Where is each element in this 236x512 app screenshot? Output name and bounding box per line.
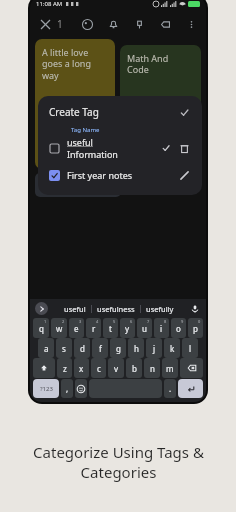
staticText: u [142, 323, 147, 334]
button[interactable]: Select tag [49, 143, 60, 154]
button[interactable]: n [144, 358, 160, 378]
button[interactable]: z [57, 358, 72, 378]
staticText: r [92, 323, 96, 334]
button[interactable]: , [61, 379, 73, 398]
staticText: ?123 [40, 385, 53, 393]
staticText: , [66, 383, 69, 394]
button[interactable]: v [108, 358, 124, 378]
button[interactable]: r [86, 318, 101, 338]
button[interactable]: c [91, 358, 106, 378]
staticText: useful [67, 136, 93, 148]
button[interactable]: Label [157, 16, 173, 32]
staticText: i [160, 323, 163, 334]
button[interactable]: Close [37, 16, 53, 32]
staticText: p [193, 323, 198, 334]
staticText: m [166, 363, 174, 374]
staticText: o [176, 323, 181, 334]
staticText: v [114, 363, 119, 374]
staticText: 9 [181, 319, 184, 324]
staticText: Categorize Using Tags & Categories [33, 442, 204, 482]
staticText: x [79, 363, 84, 374]
button[interactable]: o [171, 318, 186, 338]
staticText: l [189, 343, 192, 354]
staticText: First year notes [67, 169, 133, 181]
button[interactable]: usefully [141, 302, 179, 316]
staticText: s [62, 343, 66, 354]
staticText: A little love goes a long way [42, 46, 91, 82]
staticText: a [44, 343, 49, 354]
staticText: n [150, 363, 155, 374]
staticText: usefully [146, 304, 174, 314]
button[interactable]: Symbols [33, 379, 59, 398]
staticText: useful [64, 304, 86, 314]
button[interactable]: i [154, 318, 169, 338]
staticText: Math And Code [127, 52, 169, 76]
staticText: c [97, 363, 101, 374]
button[interactable]: Enter [178, 379, 203, 398]
button[interactable]: More options [183, 16, 199, 32]
button[interactable]: . [164, 379, 176, 398]
button[interactable]: A little love goes a long way [35, 39, 115, 169]
button[interactable]: Confirm [177, 105, 191, 119]
staticText: Information [67, 148, 118, 160]
button[interactable]: x [74, 358, 89, 378]
button[interactable]: f [92, 338, 108, 358]
button[interactable]: w [51, 318, 67, 338]
staticText: usefulness [97, 304, 135, 314]
button[interactable]: k [164, 338, 180, 358]
staticText: h [134, 343, 139, 354]
button[interactable]: j [146, 338, 162, 358]
button[interactable]: b [126, 358, 142, 378]
staticText: t [109, 323, 112, 334]
button[interactable]: Voice input [188, 302, 201, 315]
button[interactable]: q [33, 318, 49, 338]
button[interactable]: Apply [159, 141, 173, 155]
staticText: 11:08 AM [36, 0, 63, 8]
button[interactable]: t [103, 318, 118, 338]
button[interactable]: u [137, 318, 152, 338]
staticText: f [99, 343, 102, 354]
staticText: Create Tag [49, 105, 99, 119]
button[interactable]: d [74, 338, 90, 358]
staticText: 7 [147, 319, 150, 324]
button[interactable]: Reminder [105, 16, 121, 32]
button[interactable]: Delete [177, 141, 191, 155]
button[interactable]: s [56, 338, 72, 358]
button[interactable] [35, 173, 121, 197]
staticText: 6 [130, 319, 133, 324]
staticText: 1 [57, 17, 63, 31]
button[interactable]: p [188, 318, 203, 338]
staticText: 8 [164, 319, 167, 324]
button[interactable]: y [120, 318, 135, 338]
button[interactable]: m [162, 358, 178, 378]
button[interactable]: g [110, 338, 126, 358]
button[interactable]: a [38, 338, 54, 358]
staticText: e [74, 323, 79, 334]
staticText: z [63, 363, 67, 374]
button[interactable]: l [182, 338, 198, 358]
staticText: d [80, 343, 85, 354]
staticText: 5 [113, 319, 116, 324]
button[interactable]: Math And Code [120, 45, 201, 167]
button[interactable]: Pin [131, 16, 147, 32]
button[interactable]: Emoji [75, 379, 87, 398]
button[interactable]: First year notes [49, 168, 191, 182]
staticText: b [132, 363, 137, 374]
other: Edit [177, 168, 191, 182]
button[interactable]: useful [59, 302, 91, 316]
staticText: q [39, 323, 44, 334]
staticText: k [170, 343, 175, 354]
staticText: My Math Notes [42, 152, 93, 162]
button[interactable]: h [128, 338, 144, 358]
button[interactable]: Backspace [180, 358, 203, 378]
button[interactable]: More suggestions [35, 302, 48, 315]
button[interactable]: e [69, 318, 84, 338]
button[interactable]: Shift [33, 358, 55, 378]
staticText: . [169, 383, 172, 394]
staticText: y [125, 323, 130, 334]
staticText: w [56, 323, 63, 334]
button[interactable]: Color palette [79, 16, 95, 32]
button[interactable]: usefulness [92, 302, 140, 316]
